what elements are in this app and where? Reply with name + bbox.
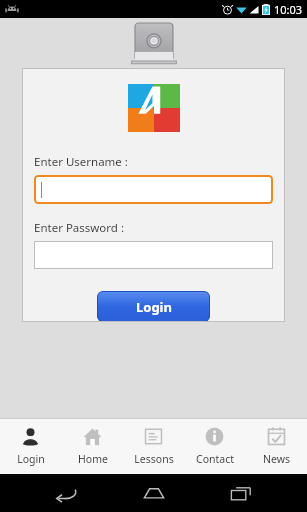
button[interactable]: Lessons bbox=[123, 418, 184, 474]
staticText: 10:03 bbox=[274, 2, 303, 17]
button[interactable] bbox=[34, 241, 273, 269]
button[interactable]: Back bbox=[44, 478, 88, 508]
button[interactable]: Recent apps bbox=[219, 478, 263, 508]
staticText: News bbox=[263, 452, 290, 466]
staticText: Contact bbox=[196, 452, 234, 466]
button[interactable]: Login bbox=[0, 418, 61, 474]
staticText: Login bbox=[17, 452, 45, 466]
staticText: Lessons bbox=[134, 452, 174, 466]
button[interactable] bbox=[34, 175, 273, 204]
staticText: Enter Username : bbox=[34, 154, 128, 170]
button[interactable]: News bbox=[246, 418, 307, 474]
staticText: Home bbox=[78, 452, 108, 466]
staticText: Enter Password : bbox=[34, 220, 124, 236]
staticText: Login bbox=[136, 298, 172, 316]
button[interactable]: Home bbox=[132, 478, 176, 508]
button[interactable]: Contact bbox=[184, 418, 245, 474]
button[interactable]: Login bbox=[97, 291, 210, 322]
button[interactable]: Home bbox=[62, 418, 123, 474]
